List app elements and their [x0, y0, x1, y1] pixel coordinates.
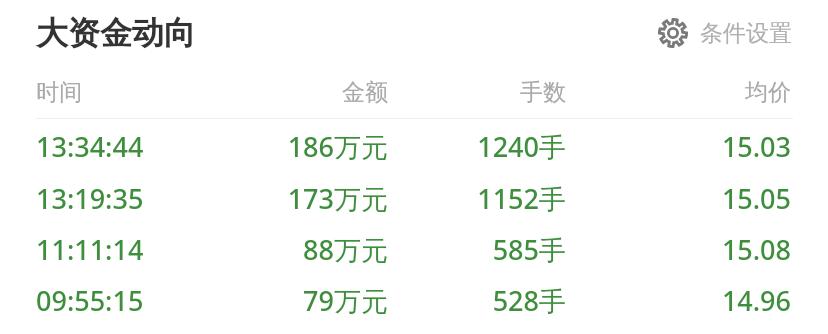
staticText: 1240手: [388, 128, 566, 165]
staticText: 13:34:44: [36, 128, 214, 165]
staticText: 14.96: [566, 282, 791, 319]
button[interactable]: 条件设置: [650, 12, 798, 54]
staticText: 09:55:15: [36, 282, 214, 319]
staticText: 13:19:35: [36, 180, 214, 217]
staticText: 金额: [214, 78, 388, 107]
staticText: 均价: [566, 78, 791, 107]
staticText: 186万元: [214, 128, 388, 165]
staticText: 15.05: [566, 180, 791, 217]
staticText: 15.03: [566, 128, 791, 165]
staticText: 条件设置: [700, 19, 792, 48]
staticText: 11:11:14: [36, 231, 214, 268]
staticText: 173万元: [214, 180, 388, 217]
staticText: 528手: [388, 282, 566, 319]
staticText: 手数: [388, 78, 566, 107]
staticText: 585手: [388, 231, 566, 268]
staticText: 79万元: [214, 282, 388, 319]
button[interactable]: 13:19:35: [0, 173, 828, 224]
button[interactable]: 13:34:44: [0, 119, 828, 173]
staticText: 15.08: [566, 231, 791, 268]
button[interactable]: 11:11:14: [0, 224, 828, 275]
staticText: 88万元: [214, 231, 388, 268]
staticText: 1152手: [388, 180, 566, 217]
button[interactable]: 09:55:15: [0, 275, 828, 326]
staticText: 大资金动向: [36, 13, 196, 53]
staticText: 时间: [36, 78, 214, 107]
